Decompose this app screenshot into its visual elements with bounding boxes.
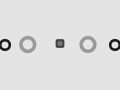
button[interactable]: Previous: [0, 40, 10, 50]
button[interactable]: Option: [21, 38, 35, 51]
button[interactable]: Next: [110, 40, 120, 50]
button[interactable]: Record: [56, 39, 64, 48]
button[interactable]: Option: [81, 38, 95, 51]
